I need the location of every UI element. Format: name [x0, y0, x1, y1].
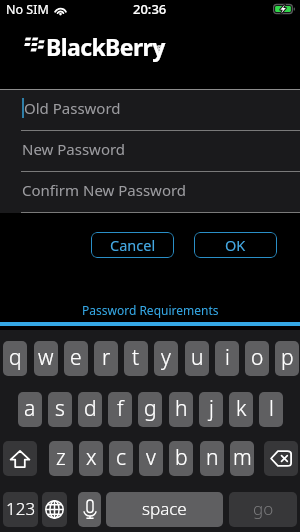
- staticText: OK: [225, 235, 246, 255]
- button[interactable]: Old Password: [0, 90, 300, 131]
- button[interactable]: h: [169, 392, 193, 427]
- button[interactable]: Switch keyboard: [42, 492, 67, 527]
- button[interactable]: x: [79, 441, 103, 476]
- staticText: Password Requirements: [82, 302, 219, 318]
- button[interactable]: s: [48, 392, 72, 427]
- staticText: l: [269, 394, 274, 423]
- button[interactable]: b: [169, 441, 193, 476]
- button[interactable]: c: [109, 441, 133, 476]
- staticText: No SIM: [6, 1, 49, 18]
- button[interactable]: t: [124, 341, 148, 376]
- button[interactable]: space: [106, 492, 223, 527]
- staticText: go: [253, 497, 274, 520]
- staticText: d: [84, 394, 97, 423]
- button[interactable]: Shift: [3, 441, 37, 476]
- staticText: b: [175, 443, 188, 472]
- button[interactable]: 123: [3, 492, 38, 527]
- staticText: BlackBerry: [46, 31, 165, 62]
- staticText: p: [281, 343, 294, 372]
- staticText: w: [38, 343, 54, 372]
- staticText: m: [233, 443, 252, 472]
- button[interactable]: y: [154, 341, 178, 376]
- staticText: r: [102, 343, 111, 372]
- staticText: c: [116, 443, 126, 472]
- staticText: t: [132, 343, 140, 372]
- staticText: i: [225, 343, 230, 372]
- staticText: f: [117, 394, 124, 423]
- staticText: s: [55, 394, 65, 423]
- button[interactable]: p: [275, 341, 299, 376]
- button[interactable]: k: [229, 392, 253, 427]
- staticText: space: [142, 497, 187, 520]
- staticText: 123: [6, 497, 36, 520]
- staticText: Cancel: [110, 235, 156, 255]
- staticText: o: [251, 343, 264, 372]
- button[interactable]: Dictate: [78, 492, 101, 527]
- button[interactable]: m: [230, 441, 254, 476]
- button[interactable]: f: [108, 392, 132, 427]
- button[interactable]: n: [200, 441, 224, 476]
- staticText: n: [206, 443, 219, 472]
- button[interactable]: Cancel: [91, 232, 174, 258]
- button[interactable]: a: [18, 392, 42, 427]
- button[interactable]: r: [94, 341, 118, 376]
- staticText: z: [56, 443, 66, 472]
- button[interactable]: New Password: [0, 131, 300, 172]
- button[interactable]: u: [185, 341, 209, 376]
- button[interactable]: l: [259, 392, 283, 427]
- button[interactable]: Confirm New Password: [0, 172, 300, 213]
- staticText: x: [86, 443, 97, 472]
- button[interactable]: d: [78, 392, 102, 427]
- button[interactable]: j: [199, 392, 223, 427]
- button[interactable]: e: [64, 341, 88, 376]
- button[interactable]: go: [229, 492, 297, 527]
- button[interactable]: g: [138, 392, 162, 427]
- staticText: New Password: [22, 139, 126, 159]
- staticText: a: [24, 394, 36, 423]
- staticText: e: [70, 343, 82, 372]
- staticText: Old Password: [24, 98, 121, 118]
- staticText: h: [175, 394, 188, 423]
- staticText: 20:36: [133, 0, 167, 18]
- staticText: y: [161, 343, 171, 372]
- button[interactable]: v: [139, 441, 163, 476]
- button[interactable]: w: [34, 341, 58, 376]
- button[interactable]: Password Requirements: [0, 300, 300, 320]
- button[interactable]: i: [215, 341, 239, 376]
- staticText: q: [9, 343, 22, 372]
- staticText: j: [209, 394, 214, 423]
- button[interactable]: z: [49, 441, 73, 476]
- button[interactable]: Backspace: [264, 441, 298, 476]
- staticText: Confirm New Password: [22, 180, 187, 200]
- button[interactable]: q: [3, 341, 27, 376]
- button[interactable]: OK: [194, 232, 277, 258]
- staticText: u: [191, 343, 204, 372]
- staticText: g: [144, 394, 157, 423]
- staticText: v: [146, 443, 156, 472]
- staticText: k: [236, 394, 247, 423]
- staticText: ®: [156, 43, 163, 54]
- button[interactable]: o: [245, 341, 269, 376]
